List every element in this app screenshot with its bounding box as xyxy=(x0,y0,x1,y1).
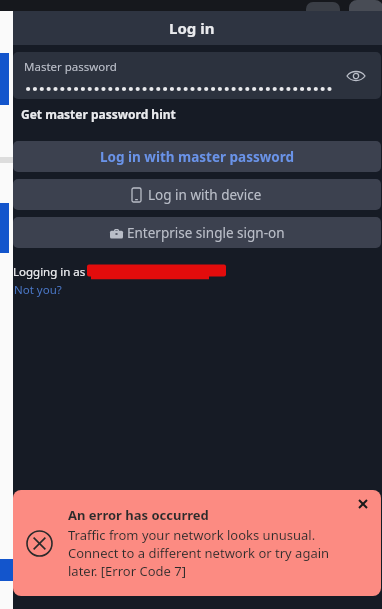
staticText: Enterprise single sign-on xyxy=(127,224,285,242)
staticText: Traffic from your network looks unusual.… xyxy=(68,526,330,580)
button[interactable]: Get master password hint xyxy=(13,103,184,125)
staticText: Log in xyxy=(169,18,215,38)
staticText: Get master password hint xyxy=(21,106,176,122)
button[interactable]: Log in with master password xyxy=(13,141,381,172)
button[interactable]: Not you? xyxy=(13,281,63,299)
button[interactable]: Close xyxy=(351,492,375,516)
button[interactable]: Enterprise single sign-on xyxy=(13,217,381,248)
button[interactable]: Toggle visibility xyxy=(341,61,371,91)
staticText: Log in with device xyxy=(148,186,262,204)
staticText: An error has occurred xyxy=(68,506,209,524)
staticText: Log in with master password xyxy=(100,148,295,166)
staticText: Not you? xyxy=(14,282,62,298)
button[interactable]: Log in with device xyxy=(13,179,381,210)
staticText: Logging in as xyxy=(13,264,86,280)
staticText: Master password xyxy=(24,59,117,75)
button[interactable]: Master password xyxy=(13,52,381,99)
